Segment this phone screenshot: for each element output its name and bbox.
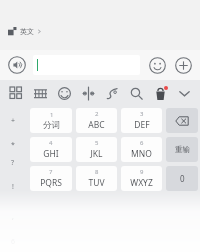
button[interactable]: Delete: [166, 108, 198, 133]
button[interactable]: Emoji: [147, 55, 167, 75]
button[interactable]: Emoji: [54, 83, 74, 103]
staticText: 1: [50, 111, 54, 119]
button[interactable]: Panels: [6, 83, 26, 103]
staticText: WXYZ: [130, 177, 153, 189]
button[interactable]: Keyboard: [30, 83, 50, 103]
button[interactable]: Search: [126, 83, 146, 103]
button[interactable]: 7: [30, 166, 72, 191]
staticText: 英文: [20, 27, 34, 36]
button[interactable]: [33, 55, 140, 75]
staticText: 5: [95, 139, 99, 147]
staticText: 8: [95, 168, 99, 176]
button[interactable]: Collapse keyboard: [174, 83, 194, 103]
staticText: MNO: [131, 148, 152, 160]
button[interactable]: 1: [30, 108, 72, 133]
staticText: !: [12, 182, 14, 192]
button[interactable]: 2: [76, 108, 117, 133]
staticText: 重输: [175, 145, 190, 154]
button[interactable]: Theme: [102, 83, 122, 103]
staticText: +: [11, 116, 16, 126]
button[interactable]: +: [0, 106, 26, 136]
button[interactable]: 英文: [0, 20, 200, 42]
button[interactable]: 6: [121, 137, 162, 162]
staticText: 6: [140, 139, 144, 147]
button[interactable]: !: [0, 172, 26, 202]
button[interactable]: More tools: [150, 83, 170, 103]
staticText: *: [11, 140, 15, 150]
staticText: 4: [49, 139, 53, 147]
staticText: DEF: [134, 119, 150, 131]
staticText: GHI: [43, 148, 59, 160]
button[interactable]: *: [0, 136, 26, 154]
button[interactable]: Voice input: [7, 55, 27, 75]
staticText: PQRS: [40, 177, 62, 189]
staticText: ?: [11, 158, 15, 168]
staticText: 3: [140, 110, 144, 118]
staticText: 分词: [43, 120, 60, 131]
staticText: 9: [140, 168, 144, 176]
staticText: JKL: [90, 148, 103, 160]
button[interactable]: 5: [76, 137, 117, 162]
staticText: 0: [180, 173, 185, 184]
button[interactable]: 8: [76, 166, 117, 191]
staticText: ABC: [88, 119, 105, 131]
button[interactable]: 0: [166, 166, 198, 191]
staticText: 2: [95, 110, 99, 118]
button[interactable]: 9: [121, 166, 162, 191]
button[interactable]: 4: [30, 137, 72, 162]
button[interactable]: More: [173, 55, 193, 75]
button[interactable]: 重输: [166, 137, 198, 162]
button[interactable]: ?: [0, 154, 26, 172]
button[interactable]: 3: [121, 108, 162, 133]
staticText: 7: [49, 168, 53, 176]
staticText: TUV: [88, 177, 105, 189]
button[interactable]: Voice settings: [78, 83, 98, 103]
